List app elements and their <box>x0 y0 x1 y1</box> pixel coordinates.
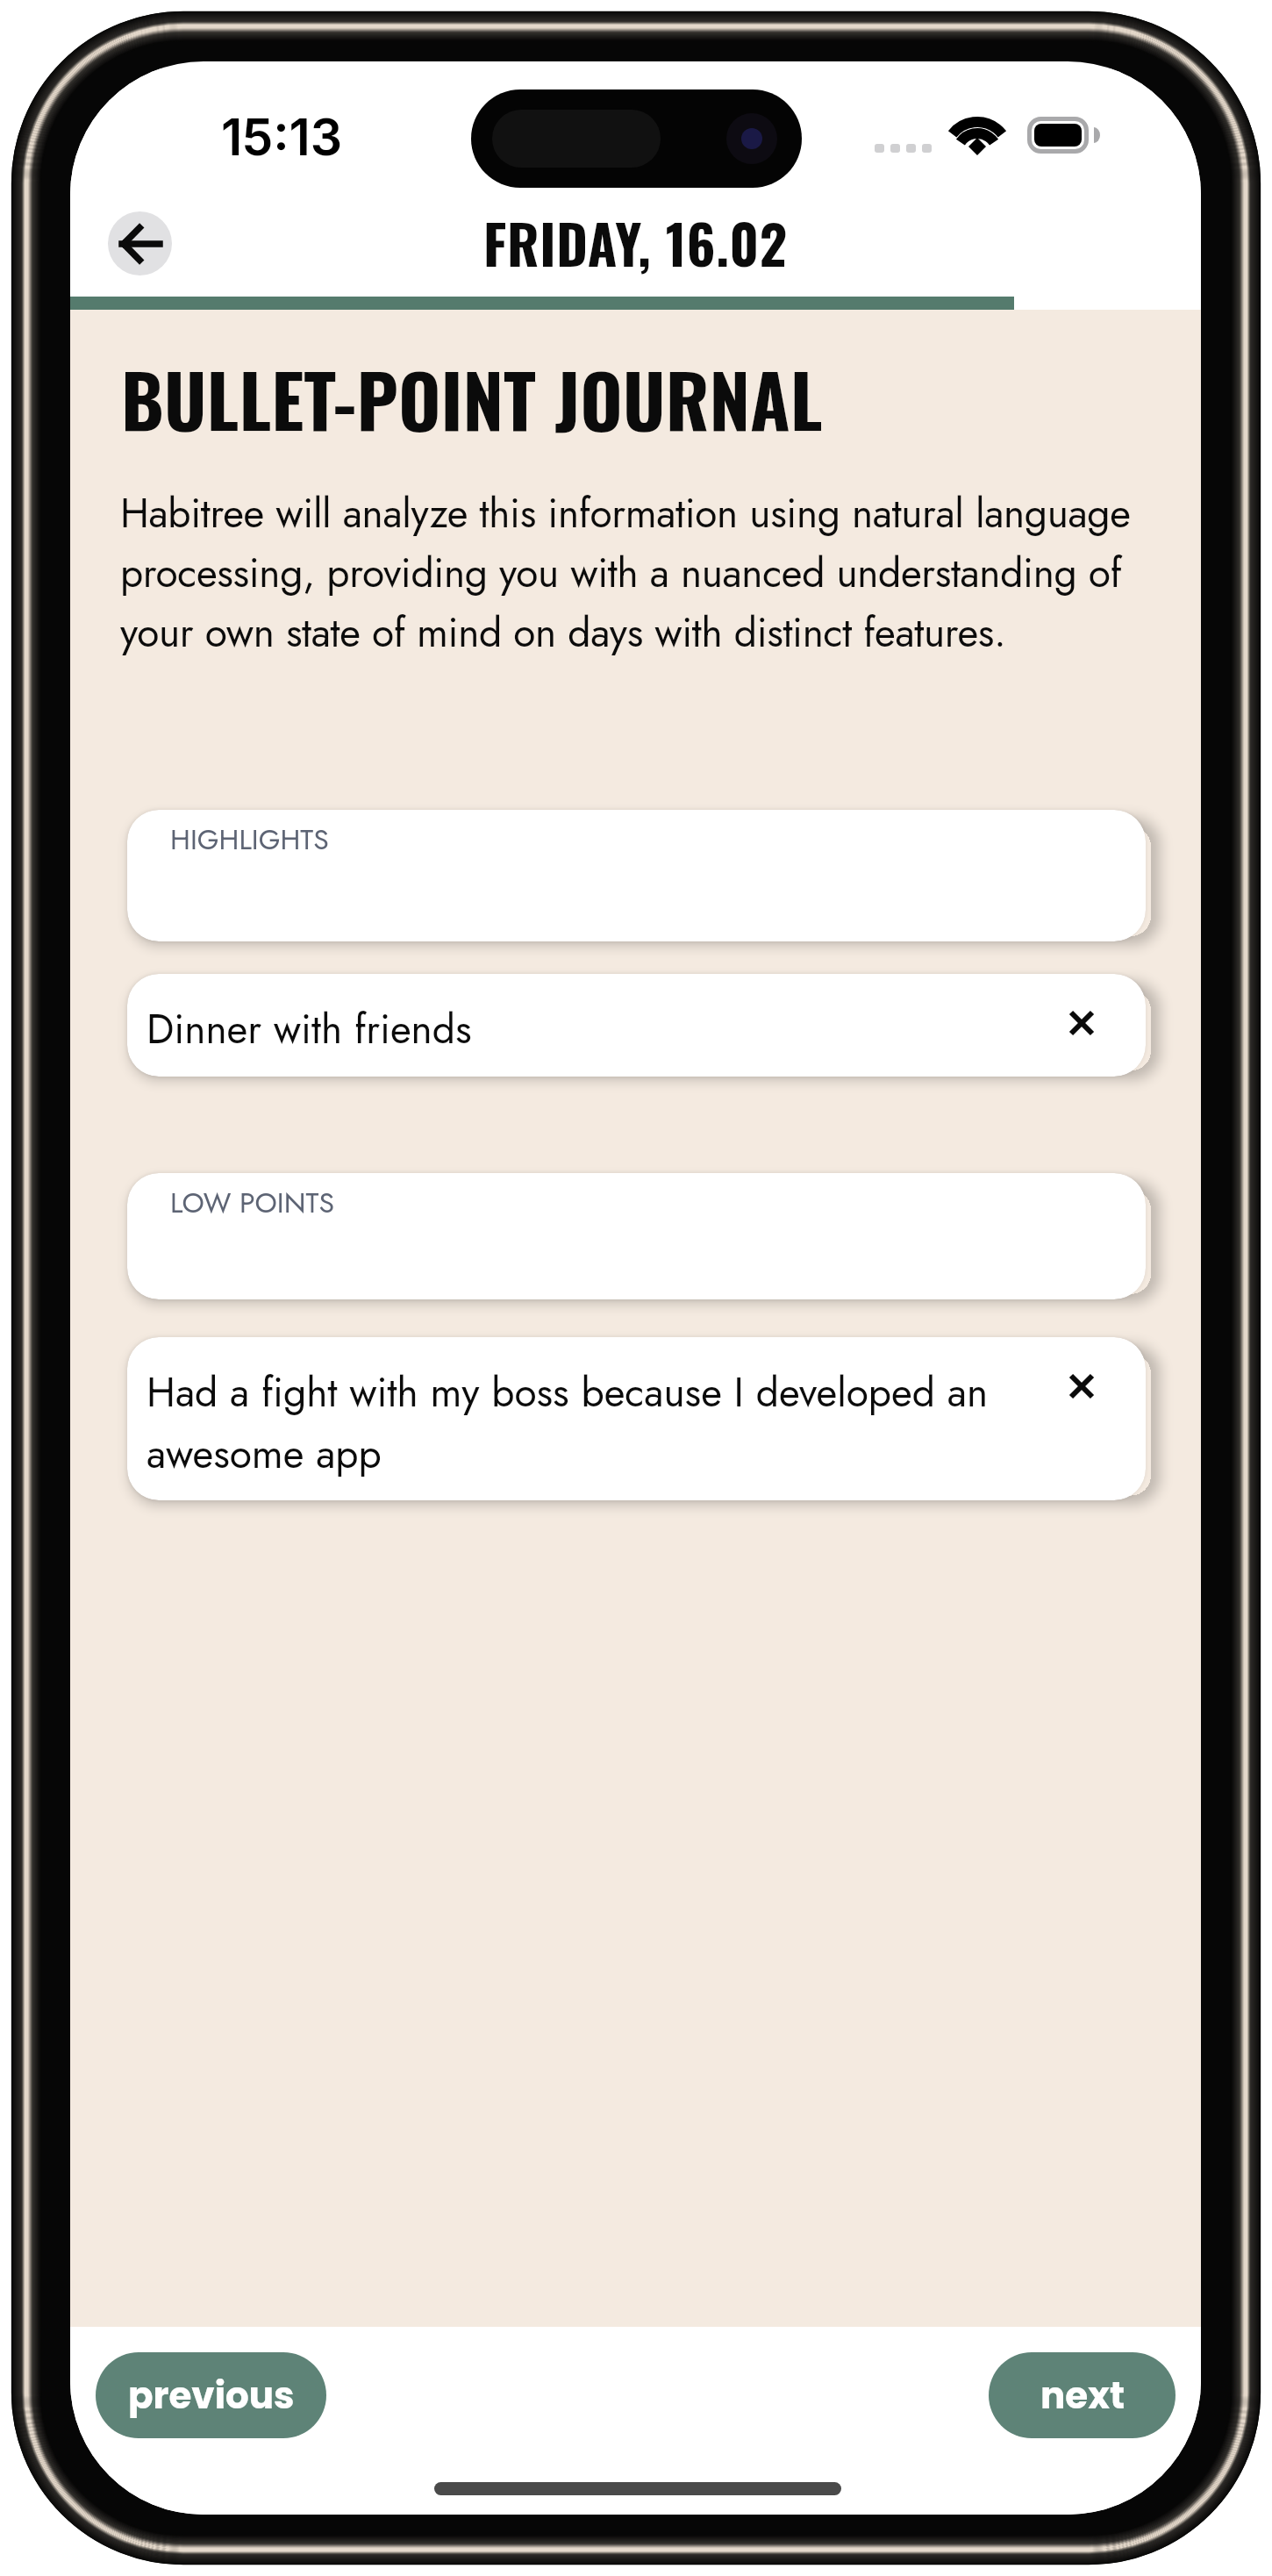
staticText: previous <box>128 2370 295 2422</box>
staticText: LOW POINTS <box>170 1183 334 1223</box>
button[interactable]: Dinner with friends <box>127 974 1146 1077</box>
staticText: Had a fight with my boss because I devel… <box>146 1363 1015 1483</box>
button[interactable]: HIGHLIGHTS <box>127 810 1146 941</box>
staticText: Dinner with friends <box>146 1000 1015 1058</box>
button[interactable]: Remove entry <box>1057 1362 1106 1411</box>
button[interactable]: Back <box>108 211 172 275</box>
button[interactable]: Remove entry <box>1057 998 1106 1048</box>
staticText: HIGHLIGHTS <box>170 819 329 860</box>
staticText: BULLET-POINT JOURNAL <box>121 345 823 453</box>
staticText: 15:13 <box>221 107 343 168</box>
button[interactable]: next <box>989 2352 1176 2438</box>
staticText: Habitree will analyze this information u… <box>120 484 1160 662</box>
button[interactable]: LOW POINTS <box>127 1173 1146 1299</box>
button[interactable]: Had a fight with my boss because I devel… <box>127 1337 1146 1500</box>
button[interactable]: previous <box>96 2352 326 2438</box>
staticText: FRIDAY, 16.02 <box>483 203 788 282</box>
staticText: next <box>1040 2370 1125 2422</box>
